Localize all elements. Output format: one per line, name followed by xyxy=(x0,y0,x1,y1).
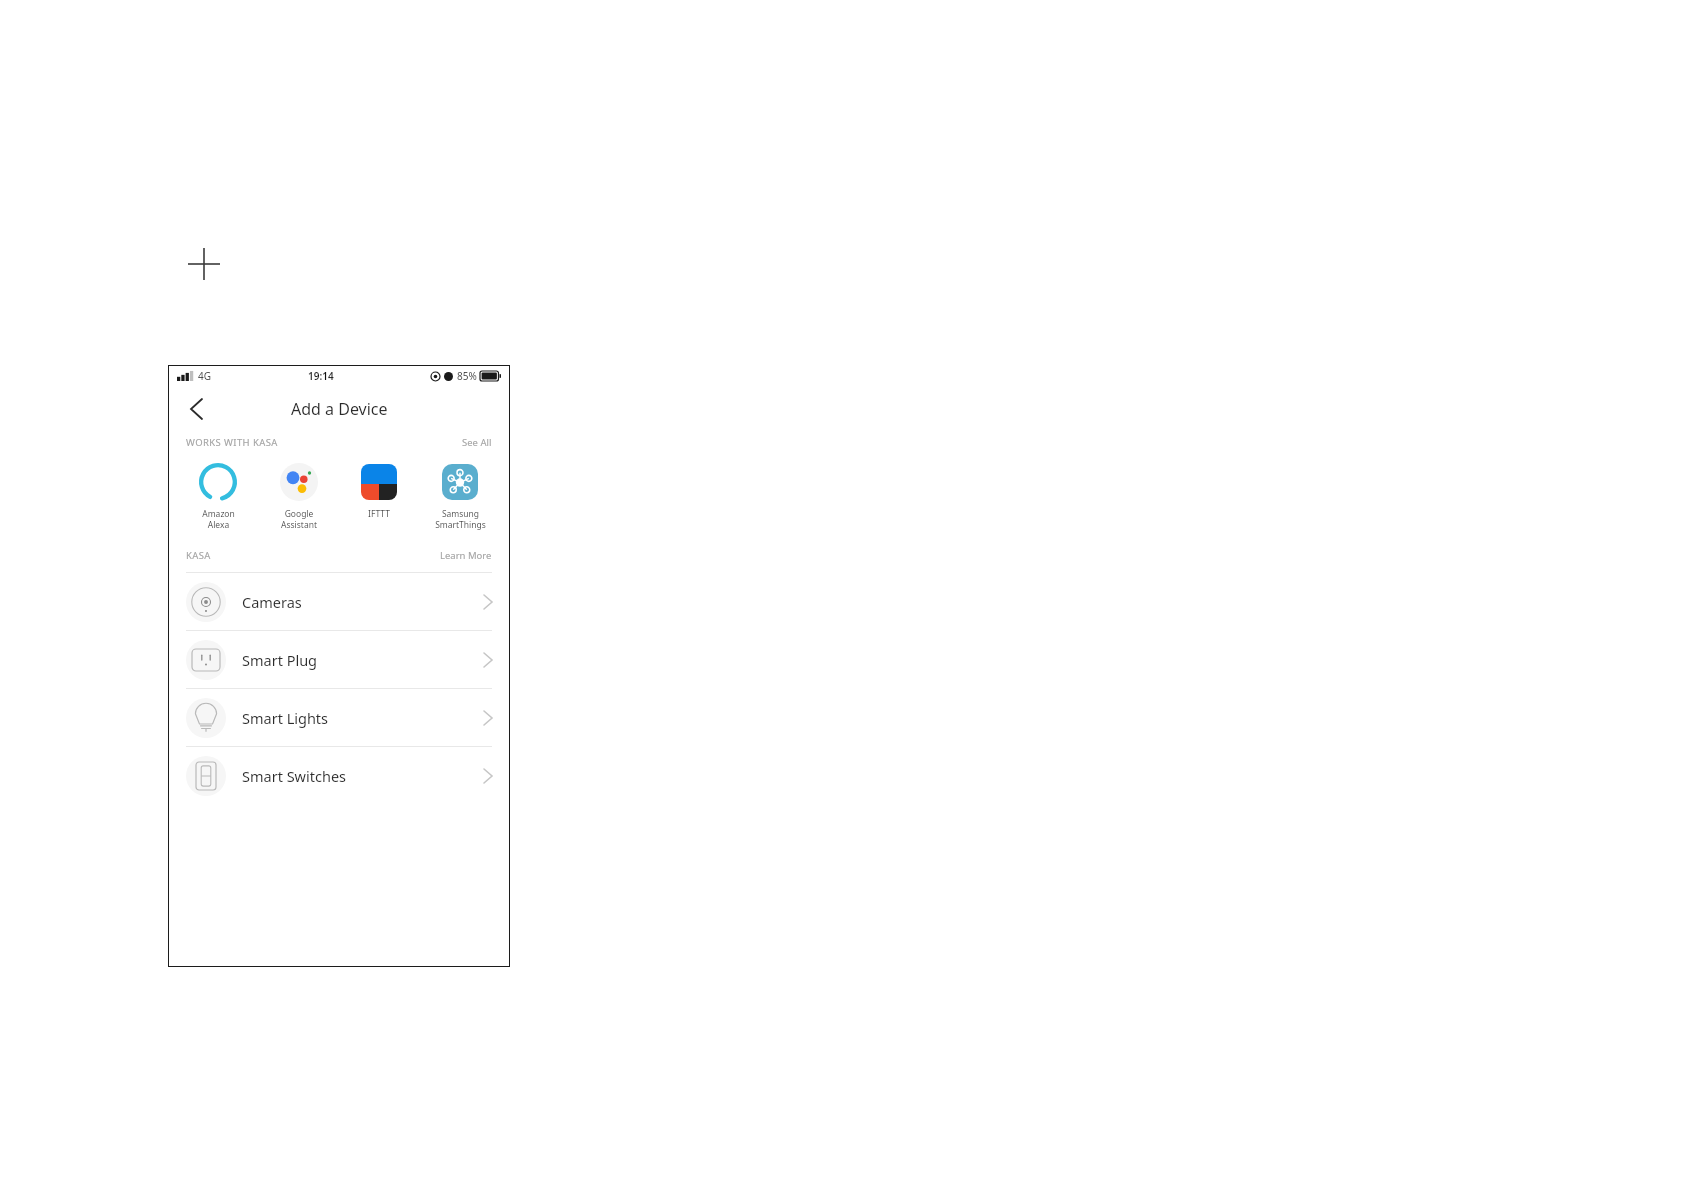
staticText: 85% xyxy=(457,369,477,383)
staticText: Amazon Alexa xyxy=(202,508,235,530)
button[interactable]: See All xyxy=(462,436,492,449)
button[interactable]: Smart Lights xyxy=(168,689,510,746)
staticText: Smart Switches xyxy=(242,766,347,786)
staticText: 4G xyxy=(198,369,211,383)
staticText: Learn More xyxy=(440,549,492,562)
staticText: Add a Device xyxy=(291,398,388,420)
staticText: Smart Lights xyxy=(242,708,329,728)
button[interactable]: Smart Plug xyxy=(168,631,510,688)
button[interactable]: Smart Switches xyxy=(168,747,510,804)
staticText: Cameras xyxy=(242,592,302,612)
button[interactable]: Back xyxy=(176,389,216,429)
staticText: KASA xyxy=(186,549,211,562)
button[interactable]: Cameras xyxy=(168,573,510,630)
staticText: IFTTT xyxy=(368,508,390,520)
button[interactable]: Samsung SmartThings xyxy=(424,461,496,530)
staticText: See All xyxy=(462,436,492,449)
staticText: 19:14 xyxy=(308,369,334,383)
staticText: Smart Plug xyxy=(242,650,318,670)
button[interactable]: Learn More xyxy=(440,549,492,562)
staticText: Google Assistant xyxy=(281,508,317,530)
button[interactable]: Amazon Alexa xyxy=(182,461,254,530)
button[interactable]: IFTTT xyxy=(343,461,415,520)
button[interactable]: Google Assistant xyxy=(263,461,335,530)
staticText: WORKS WITH KASA xyxy=(186,436,278,449)
staticText: Samsung SmartThings xyxy=(435,508,486,530)
